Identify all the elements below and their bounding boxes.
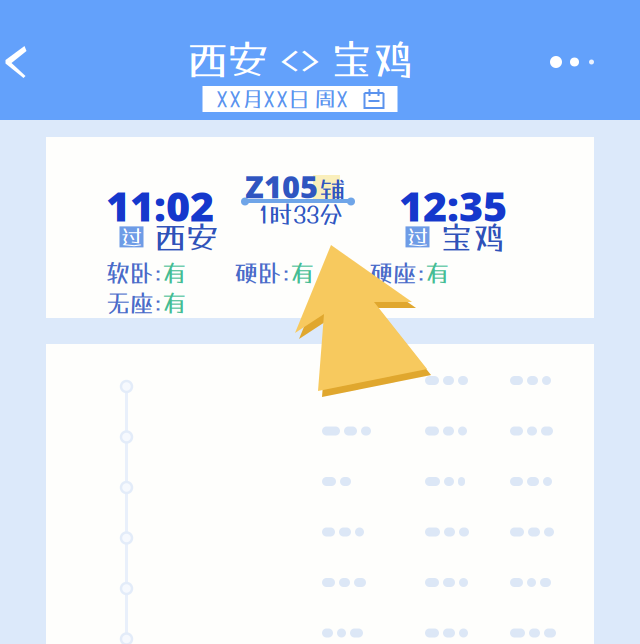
staticText: 1时33分 <box>259 200 343 228</box>
staticText: 宝鸡 <box>440 218 504 256</box>
staticText: Z105 <box>245 166 318 207</box>
staticText: 有 <box>290 259 314 287</box>
button[interactable]: Back <box>0 34 44 90</box>
staticText: XX月XX日 周X <box>215 86 348 112</box>
staticText: 软卧: <box>106 259 162 287</box>
button[interactable]: More options <box>530 34 616 90</box>
staticText: 11:02 <box>106 178 214 233</box>
staticText: 有 <box>162 289 186 317</box>
staticText: 硬座: <box>369 259 425 287</box>
staticText: 有 <box>162 259 186 287</box>
staticText: 过 <box>407 224 428 249</box>
staticText: 过 <box>121 224 142 249</box>
staticText: 无座: <box>106 289 162 317</box>
staticText: 铺 <box>319 175 346 207</box>
staticText: 12:35 <box>399 178 507 233</box>
staticText: 硬卧: <box>234 259 290 287</box>
staticText: 西安 <> 宝鸡 <box>187 35 413 83</box>
staticText: 西安 <box>154 218 218 256</box>
staticText: 有 <box>425 259 449 287</box>
